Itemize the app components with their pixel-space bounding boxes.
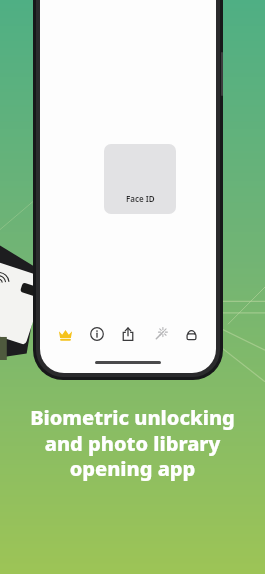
button[interactable]: Face ID	[104, 144, 176, 214]
button[interactable]: Lock	[178, 321, 204, 347]
button[interactable]: Information	[84, 321, 110, 347]
button[interactable]: Share	[115, 321, 141, 347]
button[interactable]: Effects	[147, 321, 173, 347]
staticText: Face ID	[126, 193, 155, 204]
staticText: Biometric unlocking and photo library op…	[14, 404, 251, 481]
button[interactable]: Premium	[52, 321, 78, 347]
